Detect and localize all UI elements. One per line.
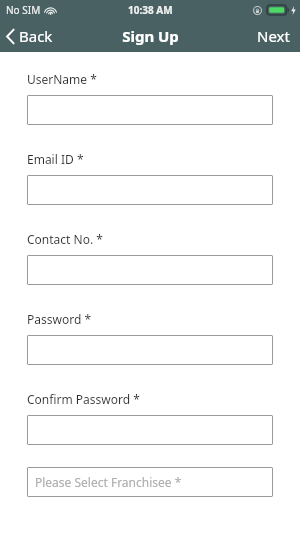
staticText: Email ID * <box>27 151 84 167</box>
staticText: Please Select Franchisee * <box>35 474 182 490</box>
button[interactable]: Confirm Password * <box>27 415 273 445</box>
staticText: No SIM <box>6 3 41 17</box>
staticText: UserName * <box>27 71 97 87</box>
staticText: Confirm Password * <box>27 391 140 407</box>
staticText: Contact No. * <box>27 231 103 247</box>
staticText: Sign Up <box>122 26 179 46</box>
button[interactable]: Contact No. * <box>27 255 273 285</box>
button[interactable]: Password * <box>27 335 273 365</box>
staticText: Back <box>19 26 53 46</box>
button[interactable]: Please Select Franchisee * <box>27 467 273 497</box>
button[interactable]: Next <box>247 20 300 52</box>
staticText: Next <box>257 26 290 46</box>
staticText: Password * <box>27 311 92 327</box>
button[interactable]: Email ID * <box>27 175 273 205</box>
button[interactable]: Back <box>0 20 63 52</box>
button[interactable]: UserName * <box>27 95 273 125</box>
staticText: 10:38 AM <box>128 3 173 17</box>
